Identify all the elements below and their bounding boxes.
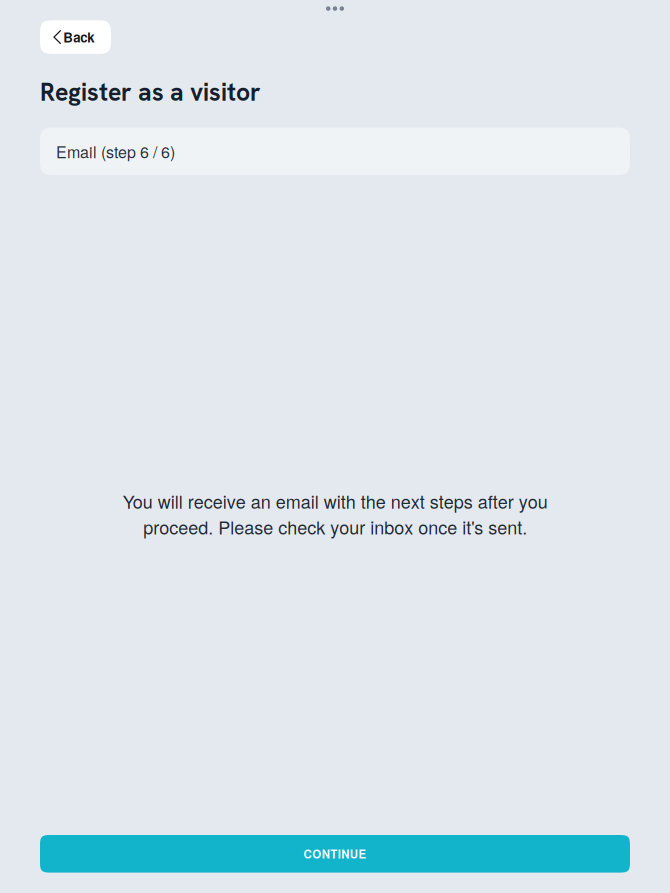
staticText: Register as a visitor: [40, 76, 261, 108]
staticText: Back: [63, 28, 94, 47]
button[interactable]: CONTINUE: [40, 835, 630, 873]
button[interactable]: Back: [40, 20, 111, 54]
staticText: You will receive an email with the next …: [122, 488, 547, 540]
staticText: Email (step 6 / 6): [56, 140, 175, 163]
staticText: CONTINUE: [304, 846, 366, 862]
